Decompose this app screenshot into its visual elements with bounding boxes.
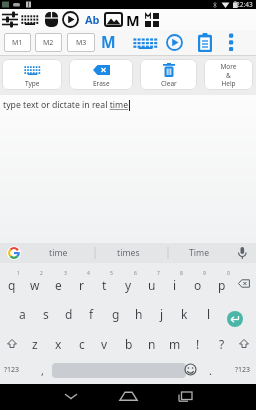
staticText: ?123 — [4, 365, 20, 375]
staticText: z — [32, 336, 38, 352]
button[interactable]: g — [104, 299, 127, 328]
button[interactable]: s — [34, 299, 57, 328]
button[interactable]: M1 — [4, 33, 31, 52]
button[interactable] — [239, 339, 249, 348]
button[interactable]: f — [80, 299, 103, 328]
button[interactable]: e — [47, 270, 70, 299]
staticText: p — [218, 277, 226, 293]
staticText: m — [169, 336, 181, 352]
staticText: n — [148, 336, 156, 352]
staticText: o — [194, 277, 202, 293]
button[interactable]: k — [173, 299, 196, 328]
staticText: q — [8, 277, 16, 293]
button[interactable] — [238, 279, 250, 288]
button[interactable]: h — [127, 299, 150, 328]
button[interactable]: d — [57, 299, 80, 328]
button[interactable]: q — [0, 270, 23, 299]
button[interactable] — [119, 391, 138, 402]
staticText: y — [125, 277, 132, 293]
staticText: c — [79, 336, 85, 352]
button[interactable]: c — [70, 329, 93, 358]
staticText: 9 — [203, 270, 206, 277]
button[interactable]: ?123 — [0, 356, 24, 384]
button[interactable]: M3 — [67, 33, 95, 52]
staticText: 2 — [40, 270, 43, 277]
staticText: More & Help — [220, 62, 237, 88]
button[interactable]: z — [23, 329, 46, 358]
button[interactable]: More & Help — [204, 59, 253, 90]
button[interactable]: u — [140, 270, 163, 299]
button[interactable]: M — [126, 10, 140, 30]
button[interactable] — [62, 11, 79, 28]
button[interactable]: p — [210, 270, 233, 299]
button[interactable] — [227, 311, 243, 327]
staticText: Erase — [93, 79, 110, 88]
staticText: x — [55, 336, 62, 352]
button[interactable]: w — [23, 270, 46, 299]
button[interactable]: Type — [2, 59, 62, 90]
button[interactable] — [105, 13, 122, 26]
button[interactable]: b — [117, 329, 140, 358]
button[interactable] — [178, 391, 193, 402]
staticText: u — [148, 277, 156, 293]
staticText: M3 — [76, 38, 87, 48]
staticText: 6 — [134, 270, 137, 277]
button[interactable] — [21, 14, 39, 25]
button[interactable]: m — [163, 329, 186, 358]
button[interactable]: M2 — [35, 33, 62, 52]
staticText: 22:43 — [236, 0, 253, 9]
button[interactable] — [145, 13, 159, 27]
staticText: l — [207, 306, 211, 322]
staticText: h — [135, 306, 143, 322]
button[interactable] — [133, 37, 158, 49]
button[interactable]: , — [31, 356, 54, 385]
button[interactable]: Erase — [69, 59, 133, 90]
button[interactable]: Time — [172, 243, 226, 263]
button[interactable] — [7, 246, 21, 260]
button[interactable]: n — [140, 329, 163, 358]
staticText: i — [173, 277, 177, 293]
button[interactable]: j — [150, 299, 173, 328]
button[interactable]: v — [93, 329, 116, 358]
button[interactable]: i — [163, 270, 186, 299]
staticText: k — [181, 306, 188, 322]
staticText: f — [89, 306, 94, 322]
button[interactable]: o — [186, 270, 209, 299]
button[interactable]: Clear — [140, 59, 197, 90]
button[interactable] — [184, 363, 197, 376]
staticText: d — [65, 306, 73, 322]
staticText: type text or dictate in real time — [3, 99, 129, 111]
button[interactable] — [226, 33, 236, 52]
button[interactable]: ? — [210, 329, 233, 358]
button[interactable]: r — [70, 270, 93, 299]
button[interactable]: t — [93, 270, 116, 299]
button[interactable]: Ab — [85, 12, 100, 27]
button[interactable]: x — [47, 329, 70, 358]
button[interactable]: ! — [186, 329, 209, 358]
button[interactable] — [52, 363, 186, 378]
staticText: Time — [189, 247, 210, 259]
staticText: Type — [25, 79, 40, 88]
staticText: time — [49, 247, 68, 259]
button[interactable] — [166, 34, 183, 51]
button[interactable]: . — [199, 356, 222, 385]
staticText: t — [102, 277, 107, 293]
button[interactable]: time — [34, 243, 82, 263]
button[interactable] — [45, 12, 58, 27]
button[interactable]: a — [11, 299, 34, 328]
button[interactable] — [64, 393, 78, 401]
staticText: 4 — [87, 270, 90, 277]
button[interactable]: M — [101, 31, 116, 52]
staticText: 3 — [64, 270, 67, 277]
staticText: Clear — [161, 79, 177, 88]
staticText: 7 — [157, 270, 160, 277]
button[interactable]: y — [117, 270, 140, 299]
button[interactable] — [7, 339, 17, 348]
staticText: v — [101, 336, 108, 352]
button[interactable]: ?123 — [231, 356, 255, 384]
button[interactable] — [198, 33, 212, 52]
staticText: . — [209, 363, 212, 378]
button[interactable] — [2, 12, 18, 27]
button[interactable]: times — [100, 243, 156, 263]
button[interactable]: l — [197, 299, 220, 328]
